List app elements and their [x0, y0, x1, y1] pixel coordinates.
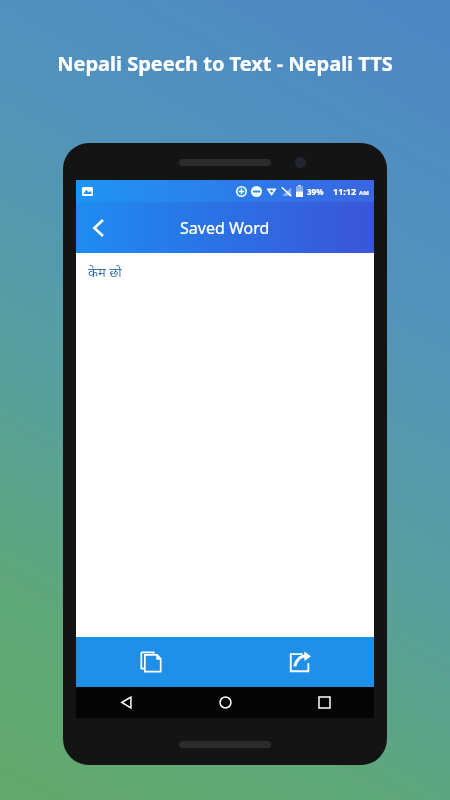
button[interactable]: Back — [76, 205, 122, 251]
staticText: AM — [359, 189, 369, 197]
button[interactable]: Home — [176, 687, 275, 718]
button[interactable]: Copy — [76, 637, 225, 687]
button[interactable]: Recent apps — [275, 687, 374, 718]
staticText: केम छो — [88, 263, 122, 281]
staticText: Saved Word — [180, 217, 270, 239]
staticText: 39% — [307, 186, 324, 197]
staticText: 11:12 — [333, 185, 357, 197]
staticText: Nepali Speech to Text - Nepali TTS — [57, 50, 393, 77]
button[interactable]: Share — [225, 637, 374, 687]
button[interactable]: Back — [76, 687, 176, 718]
